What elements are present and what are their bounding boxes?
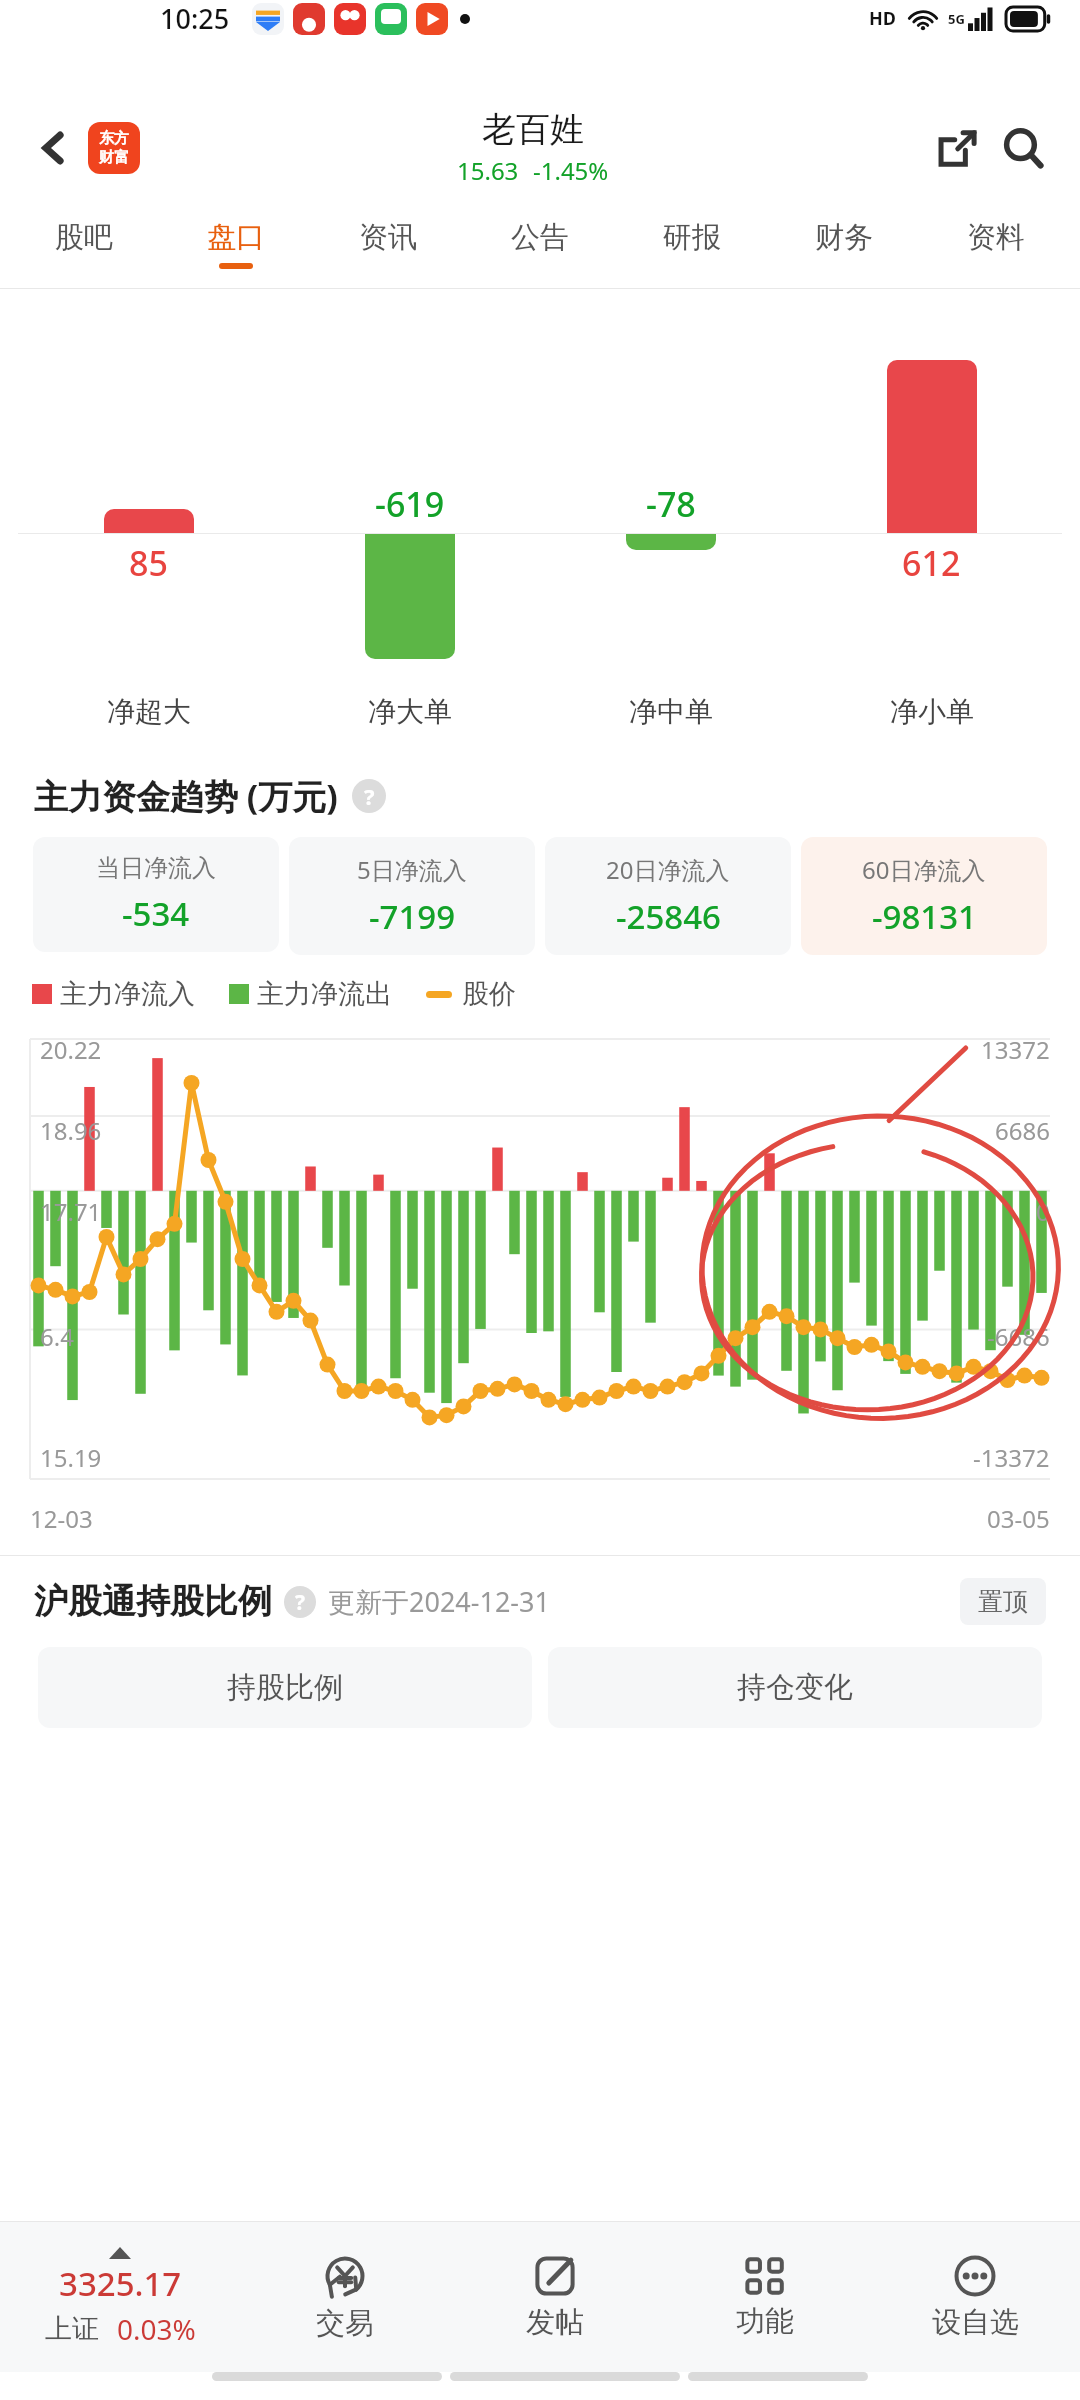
staticText: 85 [129,540,168,586]
button[interactable]: Share [926,117,988,179]
button[interactable]: 公告 [464,200,616,288]
staticText: 612 [902,540,961,586]
staticText: -98131 [872,894,977,939]
staticText: 15.63 [457,154,519,187]
staticText: 主力净流出 [257,977,392,1011]
staticText: 设自选 [932,2304,1019,2341]
button[interactable]: 持仓变化 [548,1647,1042,1728]
button[interactable]: 持股比例 [38,1647,532,1728]
button[interactable]: 3325.17 [0,2222,240,2372]
staticText: -78 [646,481,696,527]
staticText: 净中单 [629,694,713,729]
button[interactable]: 20日净流入 [545,837,791,955]
staticText: 盘口 [207,219,265,256]
staticText: 5G [948,10,965,28]
button[interactable]: 60日净流入 [801,837,1047,955]
staticText: 持仓变化 [737,1669,853,1706]
staticText: 东方 [99,129,129,148]
staticText: 财富 [99,148,129,167]
staticText: 净超大 [107,694,191,729]
staticText: 17.71 [40,1195,102,1228]
staticText: 20日净流入 [606,853,730,886]
button[interactable]: 交易 [240,2222,450,2372]
button[interactable]: Back [26,120,82,176]
staticText: 6.4 [40,1320,74,1353]
staticText: 主力资金趋势 (万元) [34,773,338,819]
staticText: 18.96 [40,1114,102,1147]
staticText: ? [295,1588,306,1617]
staticText: 0 [1036,1195,1050,1228]
staticText: -1.45% [533,154,609,187]
button[interactable]: Search [992,117,1054,179]
button[interactable]: 资料 [920,200,1072,288]
button[interactable]: 设自选 [870,2222,1080,2372]
button[interactable]: 资讯 [312,200,464,288]
staticText: 5日净流入 [357,853,467,886]
button[interactable]: 置顶 [960,1578,1046,1625]
staticText: -25846 [616,894,721,939]
staticText: 沪股通持股比例 [34,1580,272,1623]
staticText: 净大单 [368,694,452,729]
staticText: ? [364,781,375,811]
button[interactable]: 5日净流入 [289,837,535,955]
staticText: 发帖 [526,2304,584,2341]
staticText: 净小单 [890,694,974,729]
staticText: 15.19 [40,1441,102,1474]
staticText: 老百姓 [482,108,584,151]
staticText: -619 [375,481,445,527]
staticText: HD [869,6,896,31]
staticText: -13372 [973,1441,1050,1474]
staticText: 股吧 [55,219,113,256]
staticText: 置顶 [978,1586,1028,1617]
staticText: 资料 [967,219,1025,256]
staticText: 主力净流入 [60,977,195,1011]
staticText: 股价 [462,977,516,1011]
staticText: -6686 [987,1320,1050,1353]
button[interactable]: 功能 [660,2222,870,2372]
button[interactable]: Help [352,779,386,813]
button[interactable]: 研报 [616,200,768,288]
staticText: 60日净流入 [862,853,986,886]
staticText: -534 [122,891,190,936]
button[interactable]: 股吧 [8,200,160,288]
button[interactable]: 当日净流入 [33,837,279,952]
staticText: 上证 [45,2312,99,2346]
staticText: -7199 [369,894,456,939]
staticText: 财务 [815,219,873,256]
staticText: 公告 [511,219,569,256]
staticText: 更新于2024-12-31 [328,1583,550,1620]
button[interactable]: Help [284,1586,316,1618]
staticText: 13372 [981,1033,1050,1066]
staticText: 12-03 [30,1502,93,1535]
staticText: 6686 [995,1114,1050,1147]
staticText: 资讯 [359,219,417,256]
button[interactable]: 财务 [768,200,920,288]
staticText: 0.03% [117,2310,196,2348]
staticText: 03-05 [987,1502,1050,1535]
staticText: 功能 [736,2303,794,2340]
staticText: 交易 [316,2305,374,2342]
staticText: 持股比例 [227,1669,343,1706]
staticText: 20.22 [40,1033,102,1066]
staticText: 10:25 [160,0,230,37]
staticText: 研报 [663,219,721,256]
button[interactable]: 发帖 [450,2222,660,2372]
button[interactable]: East Money [88,122,140,174]
button[interactable]: 盘口 [160,200,312,288]
staticText: 3325.17 [59,2261,182,2306]
staticText: 当日净流入 [96,853,216,883]
